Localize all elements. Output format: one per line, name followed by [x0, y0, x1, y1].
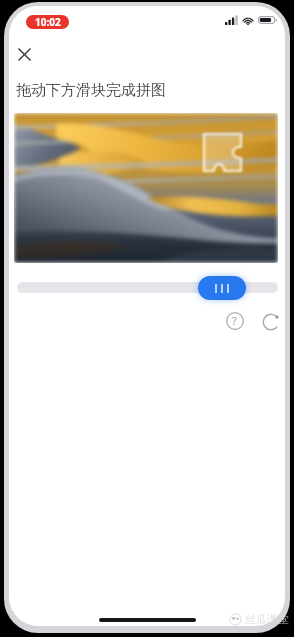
button[interactable]: Help	[221, 307, 248, 334]
staticText: 丝瓜课堂	[245, 612, 289, 626]
button[interactable]: Drag slider	[198, 276, 246, 300]
button[interactable]: Close	[10, 40, 38, 68]
staticText: 拖动下方滑块完成拼图	[16, 81, 166, 100]
staticText: 10:02	[35, 15, 61, 29]
staticText: ?	[232, 313, 237, 328]
button[interactable]: Refresh	[257, 308, 284, 335]
